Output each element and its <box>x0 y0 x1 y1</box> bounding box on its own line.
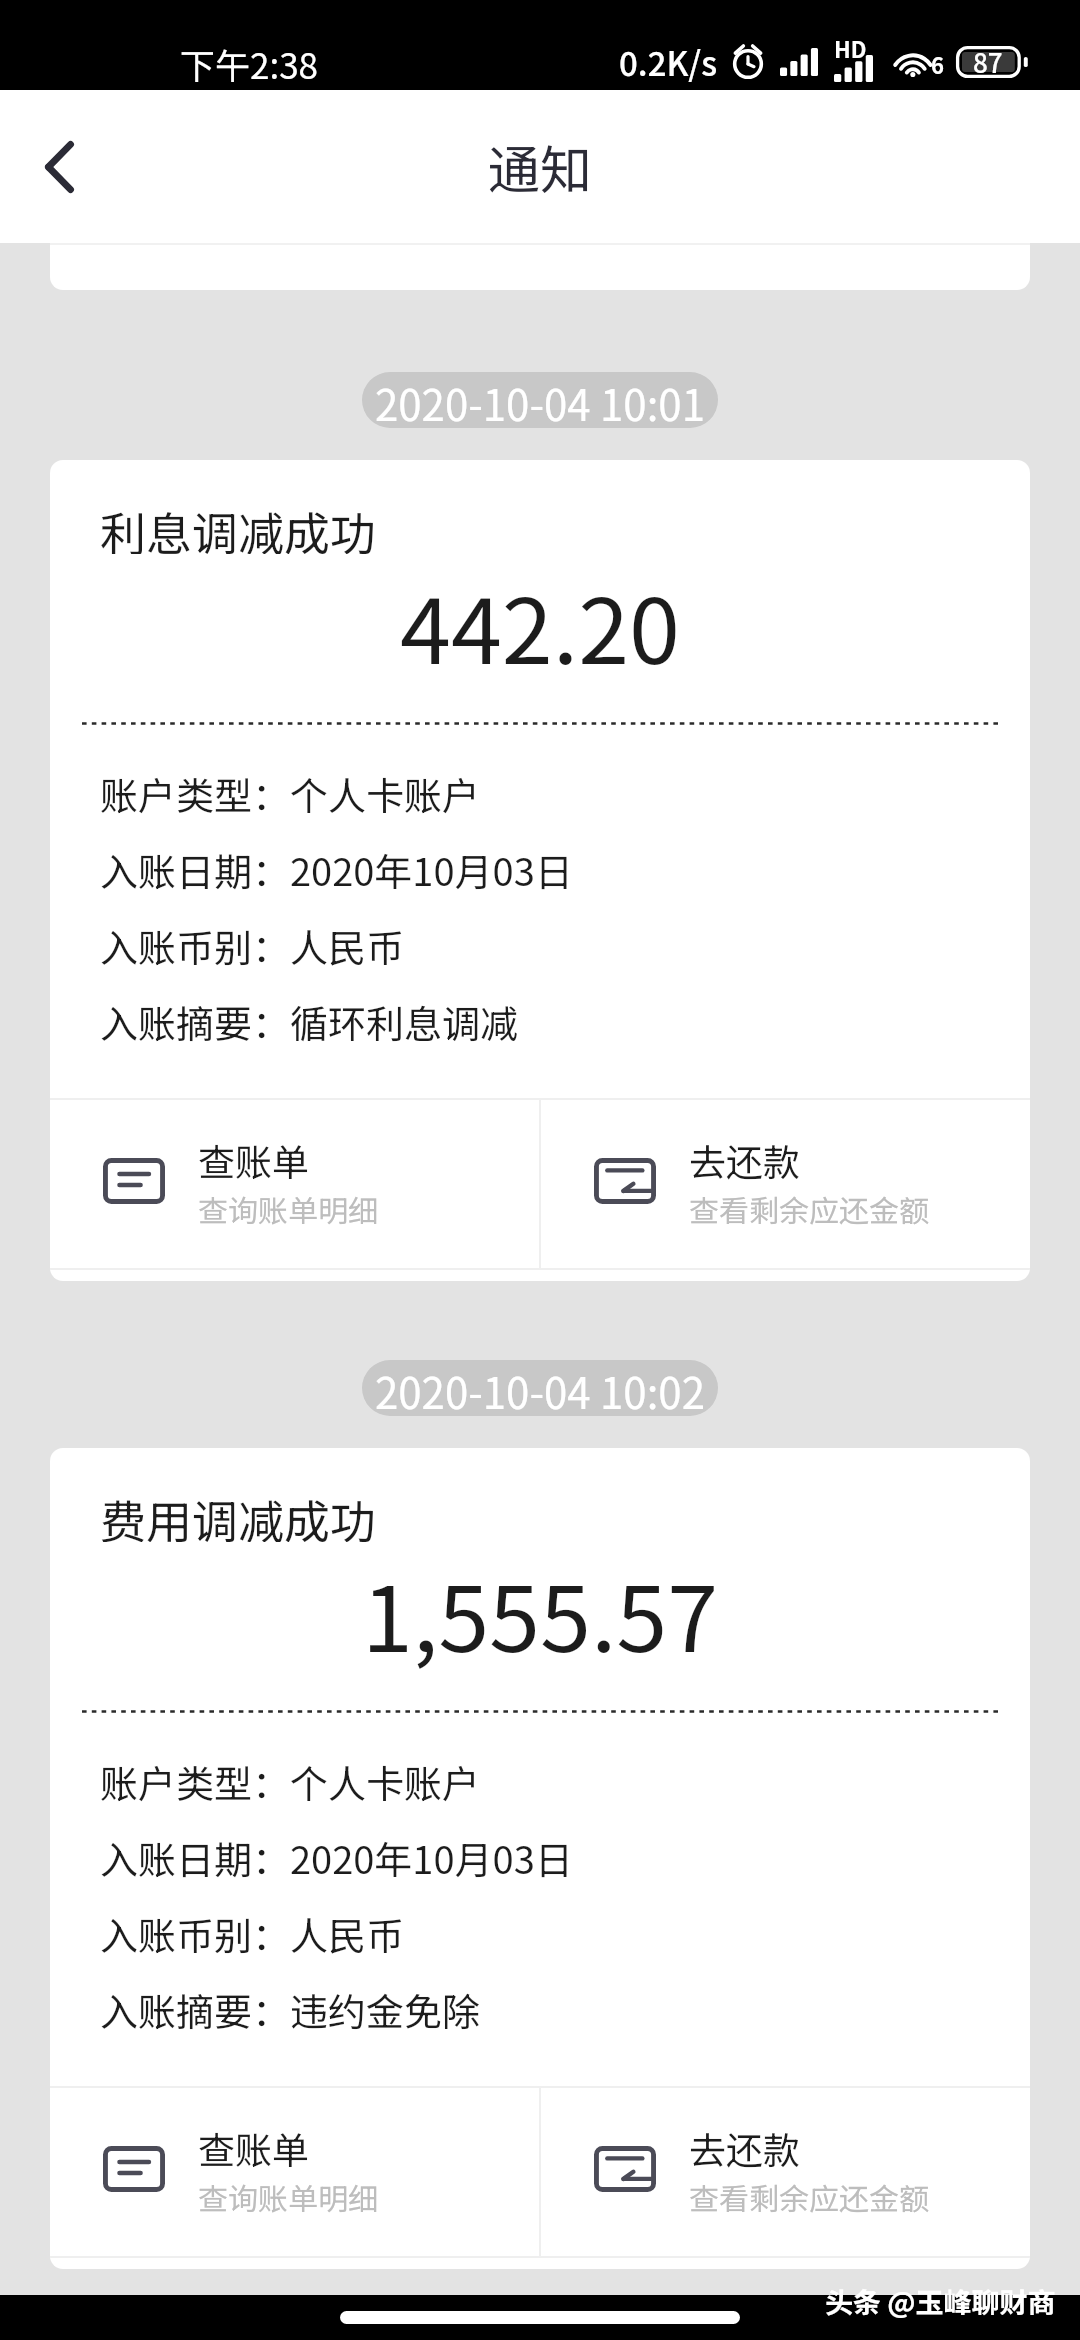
staticText: 87 <box>973 43 1003 81</box>
staticText: HD <box>834 32 867 64</box>
staticText: 入账日期：2020年10月03日 <box>100 1830 573 1885</box>
staticText: 查看剩余应还金额 <box>689 2175 929 2218</box>
staticText: 头条 @玉峰聊财商 <box>825 2281 1056 2322</box>
staticText: 去还款 <box>689 2121 800 2175</box>
button[interactable]: 查账单 <box>50 2088 539 2256</box>
staticText: 利息调减成功 <box>100 498 376 554</box>
staticText: 账户类型：个人卡账户 <box>100 1754 481 1809</box>
button[interactable]: 查账单 <box>50 1100 539 1268</box>
staticText: 442.20 <box>400 561 680 690</box>
button[interactable]: 利息调减成功 <box>50 460 1030 1281</box>
staticText: 通知 <box>488 129 593 204</box>
staticText: 0.2K/s <box>619 38 718 86</box>
staticText: 下午2:38 <box>180 38 319 89</box>
staticText: 2020-10-04 10:02 <box>375 1360 705 1416</box>
button[interactable]: 费用调减成功 <box>50 1448 1030 2269</box>
staticText: 查账单 <box>198 1133 309 1187</box>
staticText: 入账摘要：循环利息调减 <box>100 994 519 1049</box>
staticText: 账户类型：个人卡账户 <box>100 766 481 821</box>
button[interactable]: 去还款 <box>541 2088 1030 2256</box>
staticText: 去还款 <box>689 1133 800 1187</box>
staticText: 入账摘要：违约金免除 <box>100 1982 481 2037</box>
staticText: 查询账单明细 <box>198 1187 378 1230</box>
staticText: 入账币别：人民币 <box>100 918 405 973</box>
staticText: 费用调减成功 <box>100 1486 376 1542</box>
staticText: 入账日期：2020年10月03日 <box>100 842 573 897</box>
button[interactable]: 去还款 <box>541 1100 1030 1268</box>
staticText: 查账单 <box>198 2121 309 2175</box>
staticText: 查询账单明细 <box>198 2175 378 2218</box>
staticText: 1,555.57 <box>362 1549 718 1678</box>
staticText: 入账币别：人民币 <box>100 1906 405 1961</box>
staticText: 6 <box>931 48 944 80</box>
button[interactable]: Back <box>0 108 118 226</box>
staticText: 2020-10-04 10:01 <box>375 372 705 428</box>
staticText: 查看剩余应还金额 <box>689 1187 929 1230</box>
